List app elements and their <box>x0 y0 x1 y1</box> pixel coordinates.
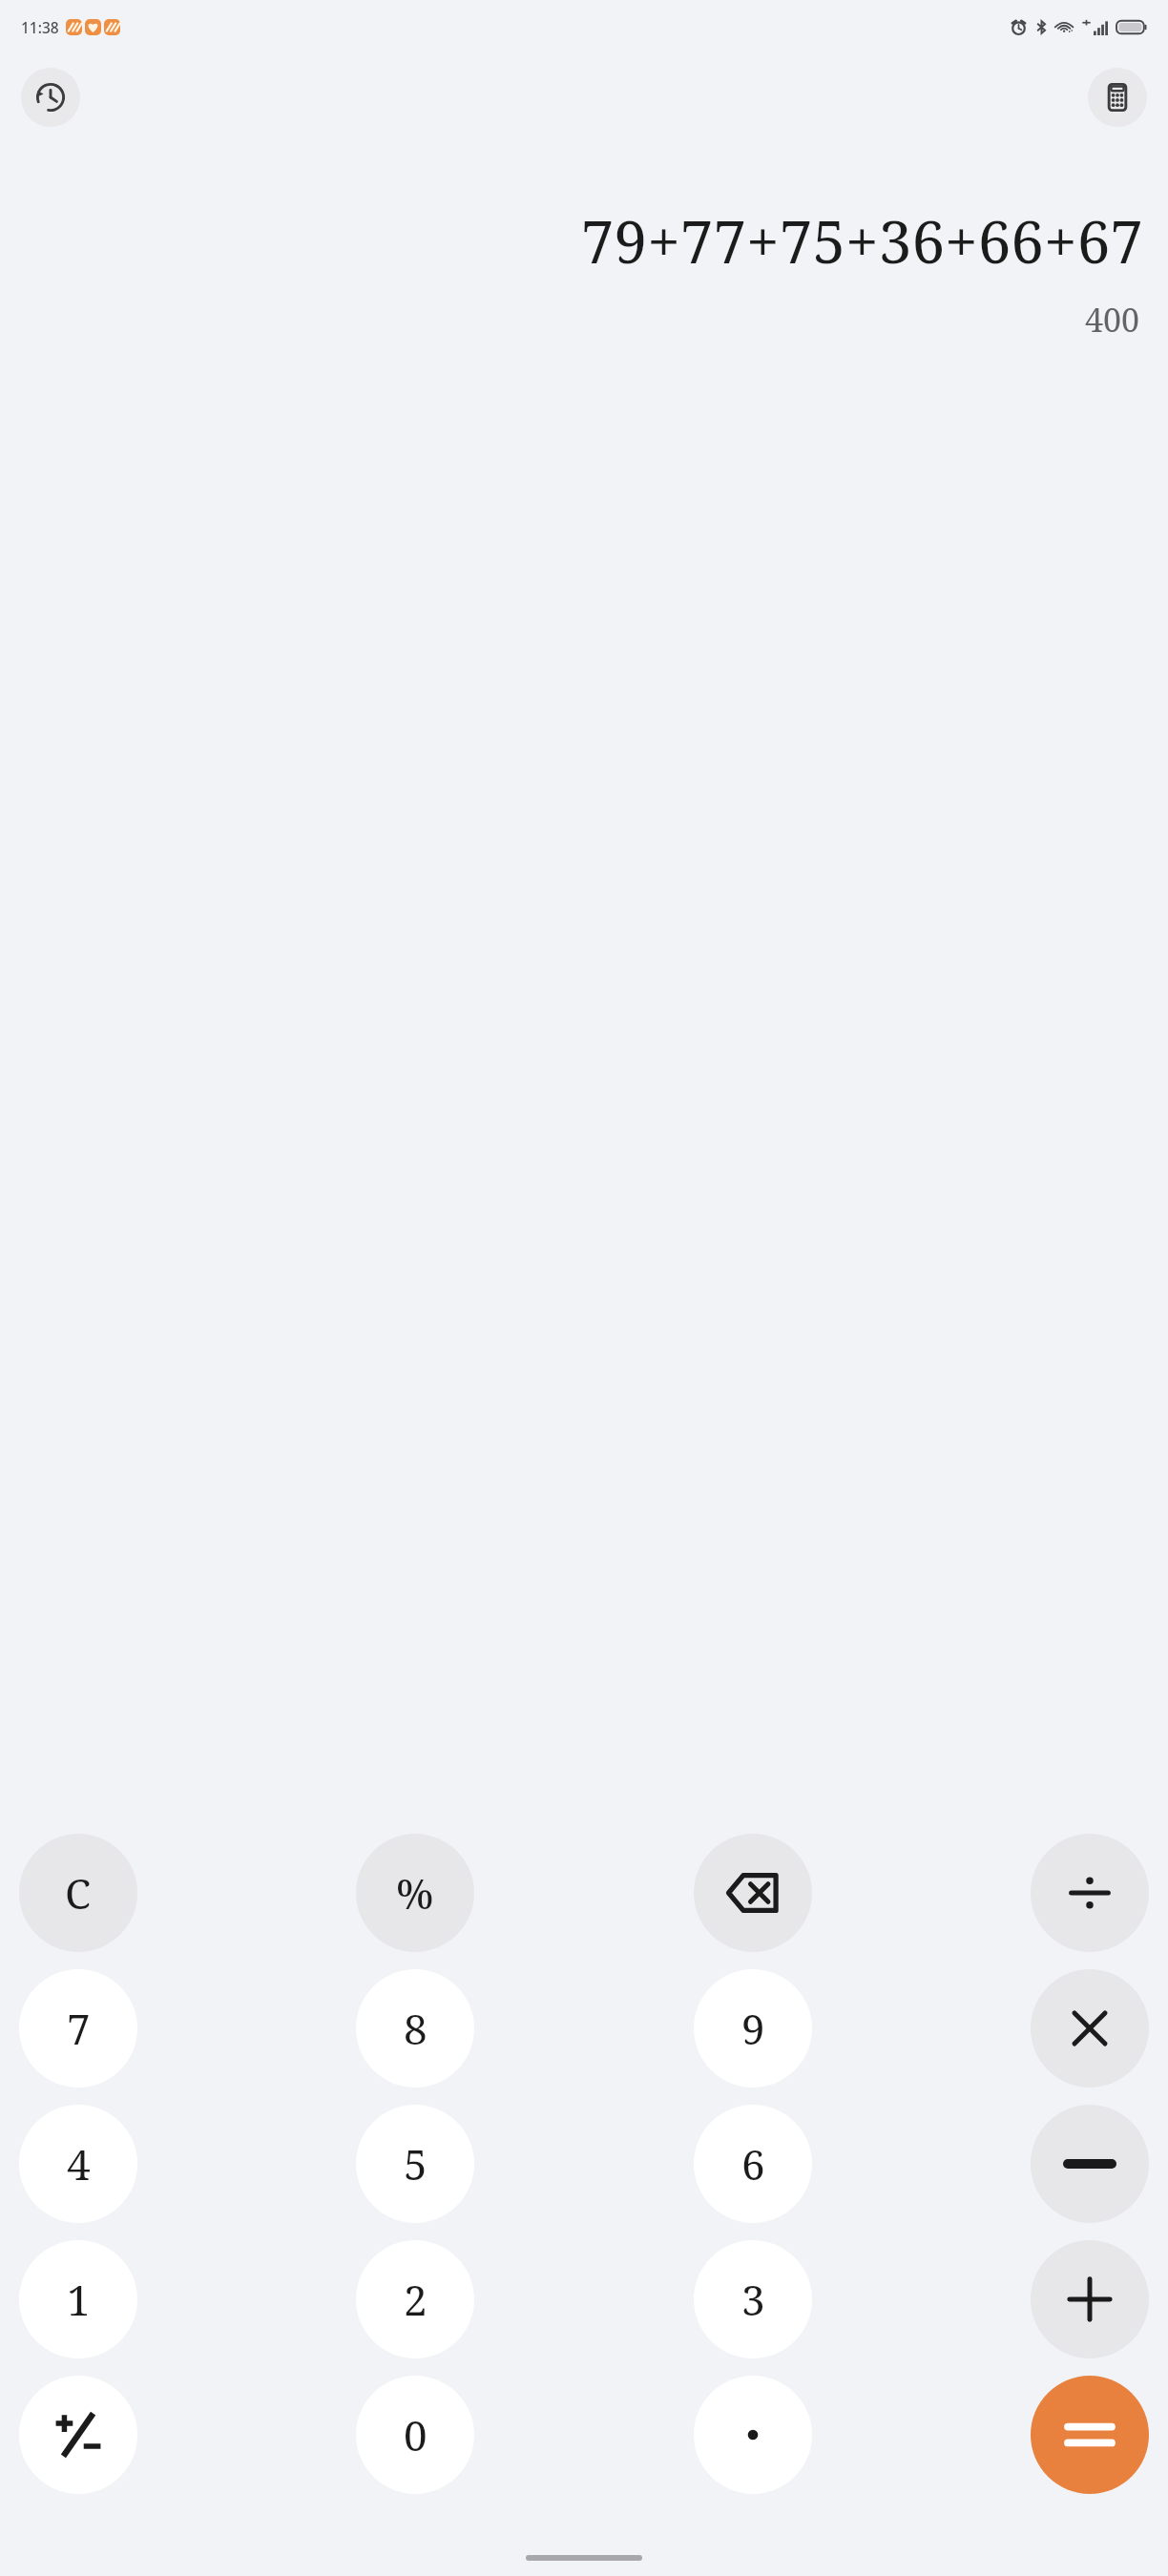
button[interactable]: Minus <box>1031 2105 1149 2223</box>
button[interactable]: 0 <box>356 2376 474 2494</box>
staticText: 1 <box>67 2271 91 2328</box>
button[interactable]: 4 <box>19 2105 137 2223</box>
button[interactable]: Toggle sign <box>19 2376 137 2494</box>
button[interactable]: Multiply <box>1031 1969 1149 2088</box>
button[interactable]: 9 <box>694 1969 812 2088</box>
staticText: 0 <box>404 2406 428 2463</box>
staticText: 6 <box>741 2135 765 2192</box>
button[interactable]: History <box>21 68 80 127</box>
button[interactable]: 8 <box>356 1969 474 2088</box>
staticText: 8 <box>404 2000 428 2057</box>
staticText: 9 <box>741 2000 765 2057</box>
button[interactable]: Decimal point <box>694 2376 812 2494</box>
button[interactable]: 6 <box>694 2105 812 2223</box>
button[interactable]: 5 <box>356 2105 474 2223</box>
staticText: 5 <box>404 2135 428 2192</box>
staticText: 4 <box>67 2135 91 2192</box>
staticText: 7 <box>67 2000 91 2057</box>
staticText: 400 <box>25 298 1139 342</box>
staticText: 79+77+75+36+66+67 <box>25 200 1143 280</box>
staticText: C <box>65 1864 92 1922</box>
button[interactable]: 1 <box>19 2240 137 2358</box>
button[interactable]: Divide <box>1031 1834 1149 1952</box>
button[interactable]: Calculator mode <box>1088 68 1147 127</box>
button[interactable]: 7 <box>19 1969 137 2088</box>
staticText: % <box>396 1864 434 1922</box>
button[interactable]: % <box>356 1834 474 1952</box>
staticText: 3 <box>741 2271 765 2328</box>
button[interactable]: 2 <box>356 2240 474 2358</box>
button[interactable]: Plus <box>1031 2240 1149 2358</box>
button[interactable]: C <box>19 1834 137 1952</box>
button[interactable]: Equals <box>1031 2376 1149 2494</box>
staticText: 2 <box>404 2271 428 2328</box>
button[interactable]: 3 <box>694 2240 812 2358</box>
staticText: 11:38 <box>21 17 59 37</box>
button[interactable]: Backspace <box>694 1834 812 1952</box>
